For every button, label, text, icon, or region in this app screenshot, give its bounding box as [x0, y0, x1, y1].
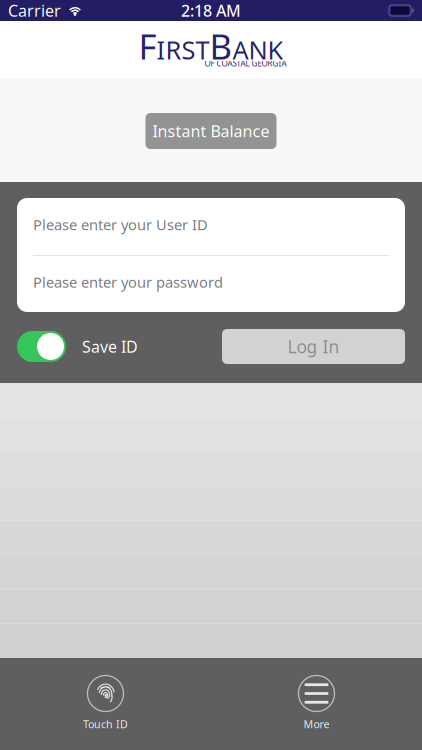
staticText: More: [303, 717, 329, 731]
staticText: IRST: [156, 33, 209, 66]
staticText: Log In: [287, 335, 339, 358]
button[interactable]: Please enter your password: [17, 256, 405, 312]
button[interactable]: Save ID: [17, 331, 66, 362]
staticText: Instant Balance: [152, 120, 269, 142]
button[interactable]: Instant Balance: [145, 113, 276, 149]
staticText: Please enter your User ID: [33, 215, 208, 234]
staticText: Touch ID: [83, 717, 128, 731]
staticText: 2:18 AM: [181, 0, 241, 21]
staticText: F: [138, 23, 156, 69]
staticText: Save ID: [82, 336, 138, 357]
staticText: ANK: [232, 33, 283, 66]
button[interactable]: More: [211, 658, 422, 750]
button[interactable]: Touch ID: [0, 658, 211, 750]
staticText: B: [209, 23, 232, 69]
staticText: OF COASTAL GEORGIA: [204, 58, 286, 69]
staticText: Carrier: [8, 0, 61, 21]
staticText: Please enter your password: [33, 272, 223, 292]
button[interactable]: Please enter your User ID: [17, 198, 405, 255]
button[interactable]: Log In: [222, 329, 405, 364]
